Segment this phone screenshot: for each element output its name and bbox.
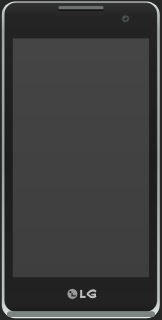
other: LG K4 phone front view [0, 0, 162, 320]
